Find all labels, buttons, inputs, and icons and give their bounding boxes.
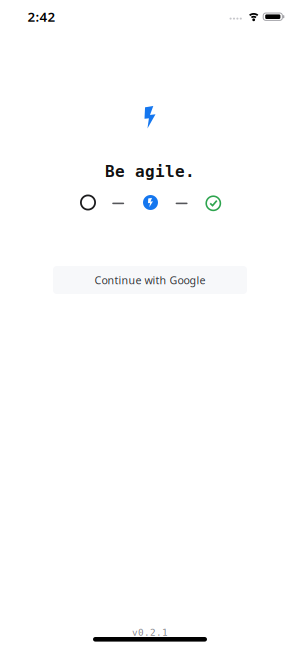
staticText: Be agile.	[105, 162, 195, 180]
staticText: 2:42	[27, 8, 55, 25]
staticText: v0.2.1	[132, 627, 168, 638]
staticText: Continue with Google	[94, 273, 205, 287]
button[interactable]: Continue with Google	[53, 266, 247, 294]
